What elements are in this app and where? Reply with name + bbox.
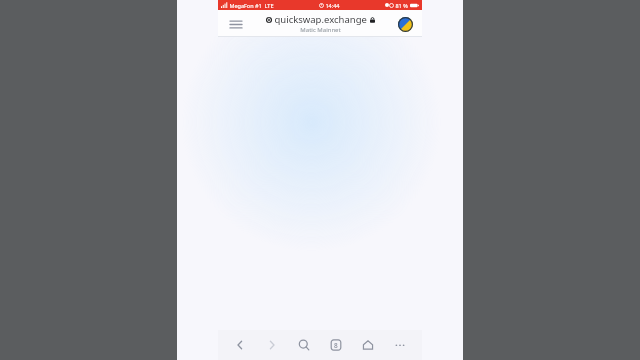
button[interactable]: Forward	[260, 333, 284, 357]
button[interactable]: Account	[395, 14, 415, 34]
staticText: 81 %	[394, 2, 410, 9]
staticText: 14:44	[324, 2, 340, 9]
button[interactable]: Tabs, 8 open	[324, 333, 348, 357]
button[interactable]: Menu	[226, 14, 246, 34]
button[interactable]: More options	[388, 333, 412, 357]
button[interactable]: Search	[292, 333, 316, 357]
staticText: quickswap.exchange	[272, 13, 370, 26]
button[interactable]: quickswap.exchange	[266, 13, 375, 34]
button[interactable]: Home	[356, 333, 380, 357]
staticText: 8	[334, 341, 338, 350]
staticText: Matic Mainnet	[300, 26, 341, 34]
button[interactable]: Back	[228, 333, 252, 357]
staticText: MegaFon #1 LTE	[228, 2, 274, 9]
